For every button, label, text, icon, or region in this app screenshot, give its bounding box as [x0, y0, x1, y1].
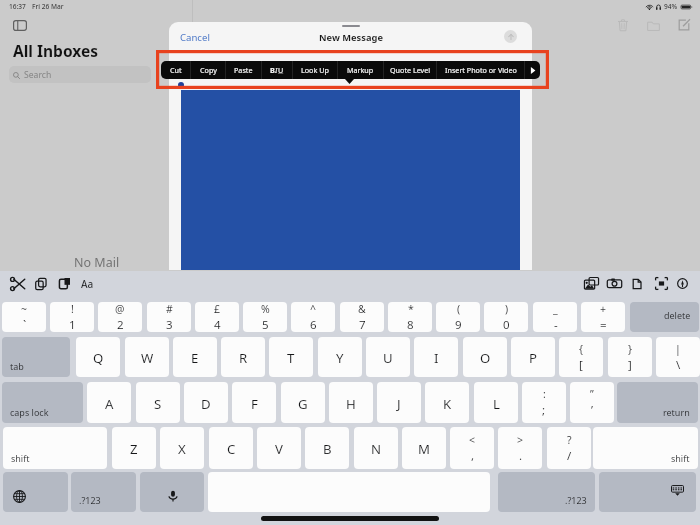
button[interactable]: M [402, 427, 446, 469]
staticText: .?123 [79, 494, 101, 506]
button[interactable]: A [87, 382, 131, 423]
button[interactable]: @ [98, 302, 142, 332]
button[interactable]: D [184, 382, 228, 423]
button[interactable]: C [209, 427, 253, 469]
staticText: & [358, 302, 366, 316]
button[interactable]: N [354, 427, 398, 469]
button[interactable]: F [232, 382, 276, 423]
button[interactable]: Look Up [293, 61, 337, 79]
button[interactable]: return [617, 382, 698, 423]
button[interactable]: Cut [8, 271, 28, 296]
button[interactable]: Insert document [629, 271, 645, 296]
button[interactable]: Insert photo [581, 271, 602, 296]
button[interactable]: Take photo [604, 271, 625, 296]
button[interactable]: G [281, 382, 325, 423]
button[interactable]: Quote Level [384, 61, 436, 79]
button[interactable]: & [340, 302, 384, 332]
button[interactable]: V [257, 427, 301, 469]
staticText: Y [336, 349, 344, 367]
staticText: Q [93, 349, 104, 367]
button[interactable]: Cut [161, 61, 190, 79]
staticText: @ [115, 302, 125, 316]
button[interactable]: Search [9, 66, 151, 83]
staticText: Aa [81, 277, 94, 291]
button[interactable]: R [221, 337, 265, 377]
button[interactable]: delete [630, 302, 699, 332]
button[interactable]: H [329, 382, 373, 423]
button[interactable]: B [305, 427, 349, 469]
button[interactable]: Paste [56, 271, 73, 296]
button[interactable]: { [559, 337, 603, 377]
button[interactable]: .?123 [71, 472, 136, 512]
button[interactable]: L [474, 382, 518, 423]
button[interactable]: Insert Photo or Video [437, 61, 524, 79]
staticText: { [579, 342, 583, 356]
button[interactable]: > [498, 427, 542, 469]
staticText: ’ [591, 402, 594, 418]
button[interactable]: W [125, 337, 169, 377]
button[interactable]: Compose [674, 16, 694, 34]
button[interactable]: Y [318, 337, 362, 377]
button[interactable]: shift [3, 427, 107, 469]
staticText: 7 [359, 317, 366, 332]
button[interactable]: caps lock [2, 382, 83, 423]
button[interactable]: .?123 [498, 472, 595, 512]
button[interactable]: Next keyboard [3, 472, 68, 512]
button[interactable]: X [160, 427, 204, 469]
button[interactable]: tab [2, 337, 70, 377]
button[interactable]: I [414, 337, 458, 377]
button[interactable]: Aa [81, 271, 94, 296]
button[interactable]: S [136, 382, 180, 423]
button[interactable]: Send [504, 30, 517, 43]
button[interactable]: Cancel [180, 31, 210, 44]
button[interactable]: Paste [226, 61, 261, 79]
button[interactable]: ^ [291, 302, 335, 332]
button[interactable]: Q [76, 337, 120, 377]
button[interactable]: Copy [191, 61, 225, 79]
button[interactable]: T [269, 337, 313, 377]
button[interactable]: } [608, 337, 652, 377]
staticText: ! [71, 302, 74, 316]
button[interactable]: ~ [2, 302, 46, 332]
button[interactable]: P [511, 337, 555, 377]
staticText: [ [579, 357, 583, 373]
button[interactable]: Dictate [140, 472, 204, 512]
button[interactable]: ? [547, 427, 591, 469]
button[interactable]: ) [484, 302, 528, 332]
button[interactable]: * [388, 302, 432, 332]
button[interactable]: Delete [613, 16, 633, 34]
button[interactable]: O [463, 337, 507, 377]
button[interactable]: Move to folder [643, 16, 663, 34]
staticText: Z [130, 440, 138, 458]
button[interactable]: # [147, 302, 191, 332]
button[interactable]: ( [436, 302, 480, 332]
button[interactable]: Show sidebar [10, 17, 30, 34]
staticText: _ [553, 302, 558, 316]
button[interactable]: : [522, 382, 566, 423]
button[interactable]: B [262, 61, 292, 79]
button[interactable]: | [656, 337, 700, 377]
button[interactable]: More options [525, 61, 540, 79]
staticText: - [554, 317, 558, 332]
button[interactable]: £ [195, 302, 239, 332]
button[interactable]: shift [593, 427, 698, 469]
button[interactable]: % [243, 302, 287, 332]
button[interactable]: + [581, 302, 625, 332]
button[interactable]: Markup [338, 61, 383, 79]
button[interactable]: Copy [32, 271, 50, 296]
button[interactable]: ! [50, 302, 94, 332]
staticText: 1 [69, 317, 76, 332]
button[interactable]: ” [570, 382, 614, 423]
staticText: K [443, 395, 452, 413]
button[interactable]: _ [533, 302, 577, 332]
button[interactable]: < [450, 427, 494, 469]
button[interactable]: Scan [652, 271, 671, 296]
button[interactable]: Z [112, 427, 156, 469]
button[interactable]: E [173, 337, 217, 377]
button[interactable]: Markup [674, 271, 691, 296]
button[interactable]: J [377, 382, 421, 423]
button[interactable]: Hide keyboard [599, 472, 696, 512]
button[interactable]: K [425, 382, 469, 423]
button[interactable]: U [366, 337, 410, 377]
